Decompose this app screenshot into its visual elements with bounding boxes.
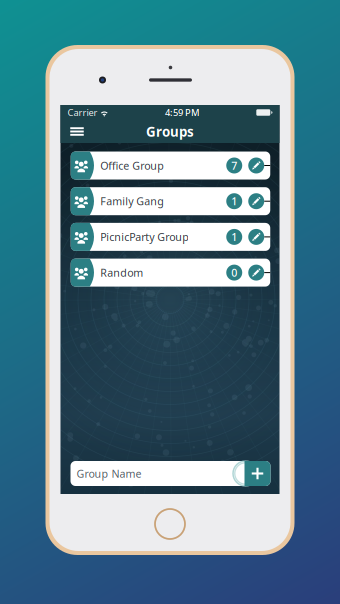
button[interactable]: Menu (65, 120, 89, 142)
staticText: Carrier (67, 106, 97, 119)
staticText: Random (100, 265, 143, 280)
staticText: Groups (146, 123, 194, 140)
staticText: Family Gang (100, 194, 164, 208)
button[interactable]: Office Group (71, 151, 270, 179)
button[interactable]: Add group (244, 461, 270, 486)
staticText: 4:59 PM (165, 106, 200, 119)
staticText: 7 (231, 158, 237, 173)
staticText: 0 (231, 265, 237, 280)
staticText: Group Name (76, 466, 141, 481)
button[interactable]: Family Gang (71, 187, 270, 215)
button[interactable]: PicnicParty Group (71, 223, 270, 251)
staticText: 1 (231, 194, 237, 208)
staticText: 1 (231, 230, 237, 244)
staticText: PicnicParty Group (100, 230, 189, 244)
button[interactable]: Random (71, 259, 270, 287)
staticText: Office Group (100, 158, 164, 173)
